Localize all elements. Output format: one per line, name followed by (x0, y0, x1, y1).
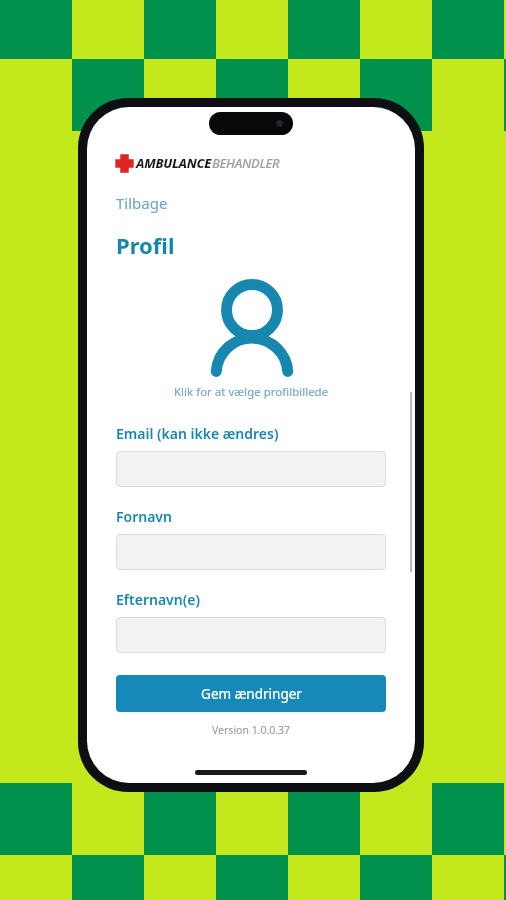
staticText: Gem ændringer (201, 685, 302, 703)
staticText: Email (kan ikke ændres) (116, 424, 279, 443)
button[interactable]: Vælg profilbillede (116, 280, 386, 400)
staticText: Profil (116, 230, 175, 260)
button[interactable]: Tilbage (116, 193, 168, 213)
staticText: Klik for at vælge profilbillede (174, 384, 329, 400)
staticText: BEHANDLER (212, 154, 280, 172)
staticText: Fornavn (116, 507, 172, 526)
button[interactable] (116, 534, 386, 570)
button[interactable] (116, 451, 386, 487)
button[interactable]: AMBULANCE (116, 154, 280, 172)
staticText: AMBULANCE (136, 154, 212, 172)
staticText: Tilbage (116, 193, 168, 213)
staticText: Efternavn(e) (116, 590, 200, 609)
button[interactable]: Gem ændringer (116, 675, 386, 712)
staticText: Version 1.0.0.37 (212, 723, 291, 737)
button[interactable] (116, 617, 386, 653)
